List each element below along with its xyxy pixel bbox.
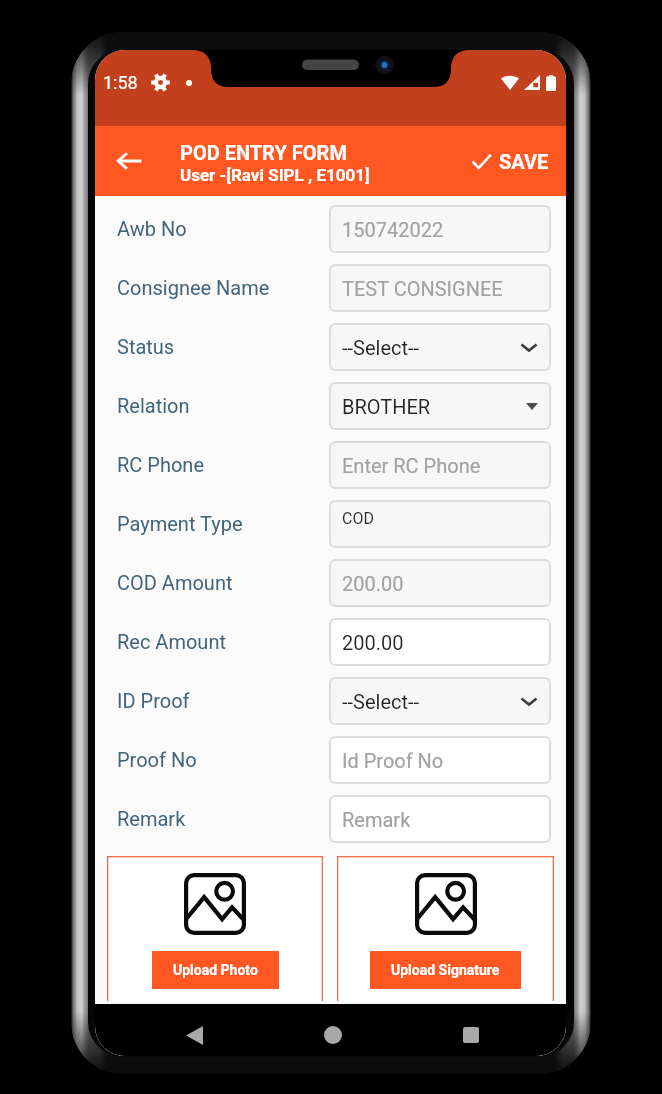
staticText: POD ENTRY FORM — [180, 141, 347, 164]
staticText: Enter RC Phone — [342, 454, 481, 477]
button[interactable]: --Select-- — [329, 677, 551, 725]
button[interactable]: COD — [329, 500, 551, 548]
staticText: Remark — [342, 808, 411, 831]
staticText: Upload Signature — [391, 962, 500, 978]
staticText: Awb No — [117, 217, 329, 240]
staticText: Payment Type — [117, 512, 329, 535]
button[interactable]: Id Proof No — [329, 736, 551, 784]
button[interactable]: 150742022 — [329, 205, 551, 253]
button[interactable]: BROTHER — [329, 382, 551, 430]
staticText: Status — [117, 335, 329, 358]
button[interactable]: Enter RC Phone — [329, 441, 551, 489]
staticText: Rec Amount — [117, 630, 329, 653]
button[interactable]: TEST CONSIGNEE — [329, 264, 551, 312]
button[interactable]: --Select-- — [329, 323, 551, 371]
button[interactable]: Remark — [329, 795, 551, 843]
button[interactable]: SAVE — [461, 126, 566, 196]
button[interactable]: 200.00 — [329, 618, 551, 666]
staticText: BROTHER — [342, 395, 431, 418]
button[interactable]: Recent apps — [450, 1014, 492, 1056]
staticText: Id Proof No — [342, 749, 444, 772]
staticText: 1:58 — [103, 72, 138, 93]
staticText: 200.00 — [342, 572, 404, 595]
staticText: TEST CONSIGNEE — [342, 277, 503, 300]
staticText: Relation — [117, 394, 329, 417]
staticText: User -[Ravi SIPL , E1001] — [180, 165, 370, 185]
staticText: COD Amount — [117, 571, 329, 594]
staticText: COD — [342, 509, 374, 528]
staticText: ID Proof — [117, 689, 329, 712]
staticText: RC Phone — [117, 453, 329, 476]
staticText: 150742022 — [342, 218, 444, 241]
button[interactable]: Back — [95, 126, 162, 196]
staticText: Remark — [117, 807, 329, 830]
staticText: Upload Photo — [173, 962, 258, 978]
staticText: Consignee Name — [117, 276, 329, 299]
staticText: SAVE — [499, 150, 549, 173]
button[interactable]: Upload Signature — [370, 951, 521, 989]
button[interactable]: Back — [173, 1014, 215, 1056]
button[interactable]: 200.00 — [329, 559, 551, 607]
staticText: 200.00 — [342, 631, 404, 654]
button[interactable]: Home — [312, 1014, 354, 1056]
staticText: Proof No — [117, 748, 329, 771]
button[interactable]: Upload Photo — [152, 951, 279, 989]
staticText: --Select-- — [342, 336, 420, 359]
staticText: --Select-- — [342, 690, 420, 713]
